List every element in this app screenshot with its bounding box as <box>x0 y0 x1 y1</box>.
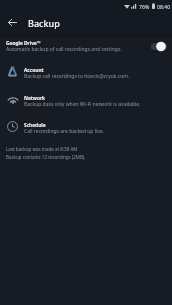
staticText: 76% <box>139 3 150 10</box>
staticText: 08:40 <box>157 3 171 10</box>
staticText: Schedule <box>24 122 46 129</box>
button[interactable]: Network <box>0 86 172 114</box>
button[interactable]: Back <box>0 11 25 34</box>
staticText: Backup <box>28 17 60 29</box>
staticText: Google Drive™ <box>6 40 41 47</box>
button[interactable]: Account <box>0 58 172 86</box>
staticText: Backup data only when Wi-Fi network is a… <box>24 101 141 108</box>
staticText: Automatic backup of call recordings and … <box>6 46 122 53</box>
staticText: Account <box>24 67 44 74</box>
button[interactable]: Schedule <box>0 113 172 141</box>
staticText: Call recordings are backed up live. <box>24 128 105 135</box>
staticText: Network <box>24 95 46 102</box>
button[interactable]: Toggle Google Drive backup <box>148 40 167 53</box>
staticText: Last backup was made at 8:38 AM <box>6 146 78 152</box>
button[interactable]: Google Drive™ <box>0 36 172 57</box>
staticText: Backup call recordings to hoecic@cryok.c… <box>24 73 130 80</box>
staticText: Backup contains 12 recordings (2MB). <box>6 154 86 160</box>
